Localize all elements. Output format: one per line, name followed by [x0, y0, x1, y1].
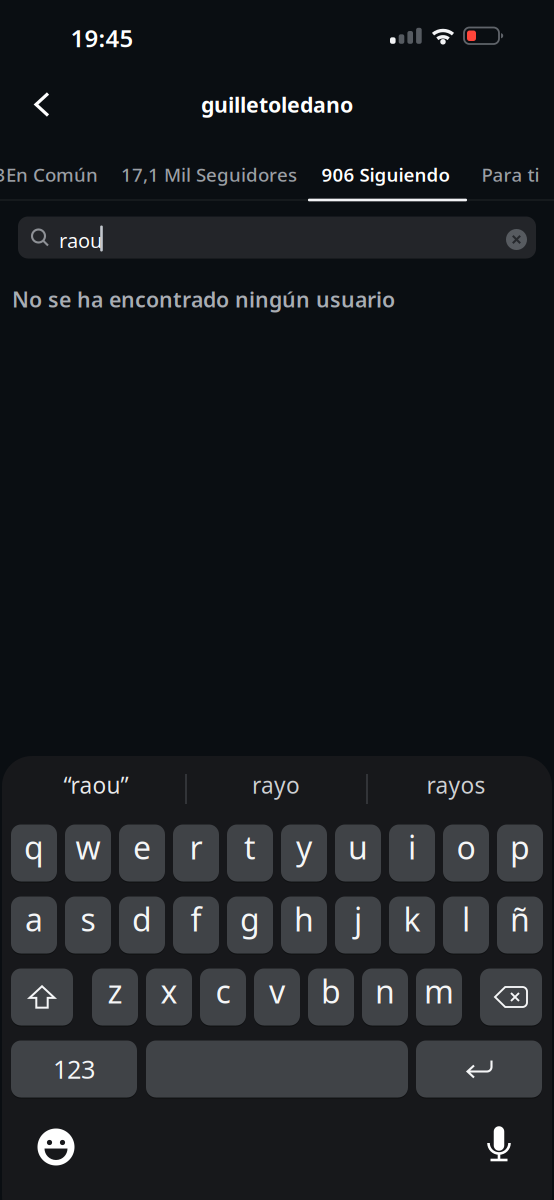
button[interactable]: u: [335, 823, 381, 882]
button[interactable]: q: [11, 823, 57, 882]
button[interactable]: s: [65, 895, 111, 954]
staticText: t: [244, 826, 256, 868]
button[interactable]: n: [362, 967, 408, 1026]
staticText: m: [424, 970, 454, 1012]
button[interactable]: 906 Siguiendo: [321, 162, 450, 187]
button[interactable]: v: [254, 967, 300, 1026]
button[interactable]: ñ: [497, 895, 543, 954]
button[interactable]: Dictate: [486, 1126, 512, 1166]
button[interactable]: Return: [416, 1039, 542, 1098]
button[interactable]: 17,1 Mil Seguidores: [121, 162, 297, 187]
staticText: j: [354, 898, 362, 940]
staticText: y: [296, 826, 312, 868]
button[interactable]: m: [416, 967, 462, 1026]
staticText: rayos: [426, 770, 485, 800]
staticText: z: [107, 970, 122, 1012]
staticText: n: [375, 970, 395, 1012]
staticText: o: [456, 826, 475, 868]
button[interactable]: Space: [146, 1039, 408, 1098]
button[interactable]: h: [281, 895, 327, 954]
button[interactable]: x: [146, 967, 192, 1026]
staticText: 19:45: [70, 22, 133, 54]
staticText: rayo: [252, 770, 300, 800]
staticText: r: [189, 826, 202, 868]
staticText: k: [403, 898, 420, 940]
button[interactable]: Delete: [480, 967, 542, 1026]
staticText: d: [132, 898, 152, 940]
button[interactable]: t: [227, 823, 273, 882]
staticText: f: [190, 898, 201, 940]
button[interactable]: Para ti: [481, 162, 539, 187]
button[interactable]: k: [389, 895, 435, 954]
staticText: 906 Siguiendo: [321, 162, 450, 187]
button[interactable]: a: [11, 895, 57, 954]
staticText: En Común: [6, 162, 98, 187]
staticText: q: [24, 826, 44, 868]
staticText: “raou”: [63, 770, 128, 800]
button[interactable]: z: [92, 967, 138, 1026]
staticText: 3: [0, 162, 5, 187]
staticText: raou: [59, 227, 102, 254]
button[interactable]: En Común: [6, 162, 98, 187]
staticText: h: [294, 898, 314, 940]
button[interactable]: c: [200, 967, 246, 1026]
staticText: b: [321, 970, 341, 1012]
staticText: w: [75, 826, 100, 868]
staticText: s: [80, 898, 95, 940]
button[interactable]: Clear search text: [506, 229, 527, 250]
button[interactable]: Emoji: [36, 1127, 76, 1167]
button[interactable]: g: [227, 895, 273, 954]
staticText: c: [215, 970, 230, 1012]
staticText: p: [510, 826, 530, 868]
staticText: No se ha encontrado ningún usuario: [12, 285, 395, 313]
button[interactable]: p: [497, 823, 543, 882]
staticText: guilletoledano: [201, 90, 353, 119]
button[interactable]: i: [389, 823, 435, 882]
staticText: g: [240, 898, 260, 940]
button[interactable]: y: [281, 823, 327, 882]
staticText: i: [408, 826, 416, 868]
button[interactable]: j: [335, 895, 381, 954]
button[interactable]: Numbers: [11, 1039, 137, 1098]
staticText: l: [462, 898, 470, 940]
button[interactable]: w: [65, 823, 111, 882]
button[interactable]: r: [173, 823, 219, 882]
staticText: a: [25, 898, 43, 940]
staticText: x: [160, 970, 177, 1012]
staticText: Para ti: [481, 162, 539, 187]
button[interactable]: o: [443, 823, 489, 882]
staticText: 123: [53, 1052, 95, 1086]
button[interactable]: e: [119, 823, 165, 882]
button[interactable]: f: [173, 895, 219, 954]
button[interactable]: b: [308, 967, 354, 1026]
button[interactable]: rayo: [184, 763, 368, 807]
button[interactable]: Back: [33, 91, 51, 117]
staticText: v: [269, 970, 285, 1012]
button[interactable]: rayos: [364, 763, 548, 807]
staticText: e: [133, 826, 151, 868]
staticText: ñ: [510, 898, 530, 940]
staticText: u: [348, 826, 368, 868]
button[interactable]: l: [443, 895, 489, 954]
button[interactable]: “raou”: [4, 763, 188, 807]
button[interactable]: d: [119, 895, 165, 954]
button[interactable]: Shift: [11, 967, 73, 1026]
staticText: 17,1 Mil Seguidores: [121, 162, 297, 187]
